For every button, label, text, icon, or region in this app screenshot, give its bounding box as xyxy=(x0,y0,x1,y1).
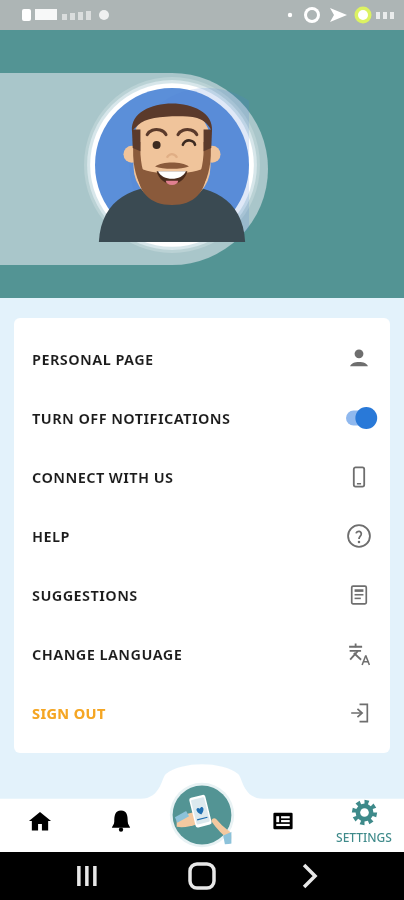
staticText: CHANGE LANGUAGE xyxy=(32,644,183,664)
button[interactable]: Notifications xyxy=(80,778,161,852)
staticText: SETTINGS xyxy=(336,829,392,845)
button[interactable]: Profile photo xyxy=(84,77,260,253)
staticText: HELP xyxy=(32,526,70,546)
button[interactable]: HELP xyxy=(14,506,390,565)
button[interactable]: SETTINGS xyxy=(323,778,404,852)
staticText: SUGGESTIONS xyxy=(32,585,138,605)
button[interactable]: Scan xyxy=(167,780,237,850)
button[interactable]: SUGGESTIONS xyxy=(14,565,390,624)
button[interactable]: PERSONAL PAGE xyxy=(14,329,390,388)
staticText: TURN OFF NOTIFICATIONS xyxy=(32,408,231,428)
button[interactable]: Home xyxy=(0,778,80,852)
staticText: PERSONAL PAGE xyxy=(32,349,154,369)
button[interactable]: SIGN OUT xyxy=(14,683,390,742)
button[interactable]: Feed xyxy=(242,778,323,852)
staticText: CONNECT WITH US xyxy=(32,467,174,487)
button[interactable]: CHANGE LANGUAGE xyxy=(14,624,390,683)
button[interactable]: CONNECT WITH US xyxy=(14,447,390,506)
button[interactable]: TURN OFF NOTIFICATIONS xyxy=(14,388,390,447)
staticText: SIGN OUT xyxy=(32,703,106,723)
